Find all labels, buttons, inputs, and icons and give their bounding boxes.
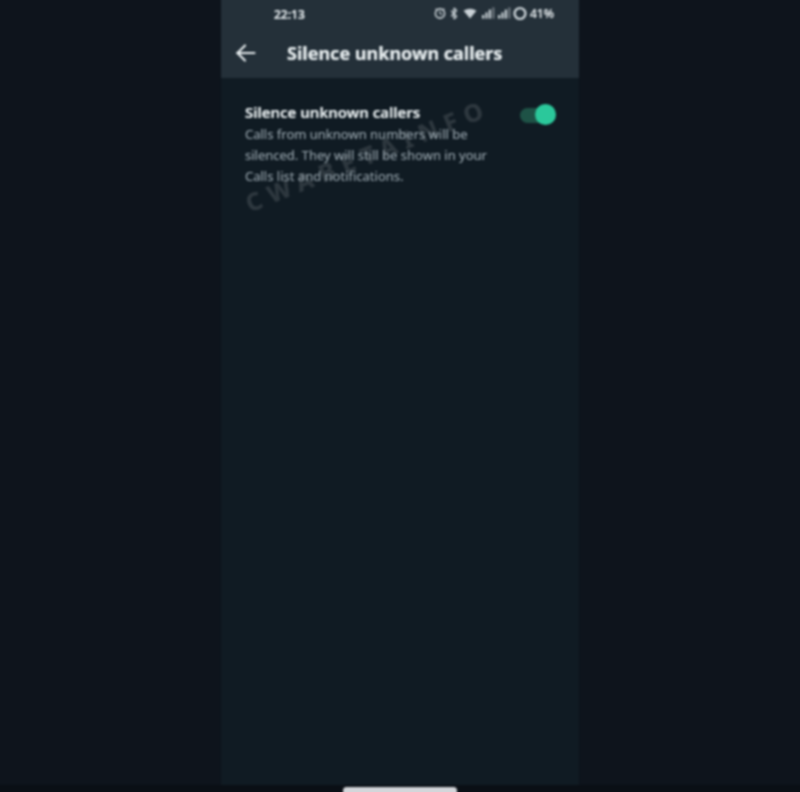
staticText: Silence unknown callers xyxy=(245,102,421,122)
staticText: Calls from unknown numbers will be silen… xyxy=(245,125,487,185)
button[interactable] xyxy=(221,28,271,78)
staticText: CWABETAINFO xyxy=(240,90,496,219)
button[interactable]: Silence unknown callers xyxy=(221,78,579,185)
staticText: 22:13 xyxy=(274,6,305,22)
staticText: Silence unknown callers xyxy=(287,41,503,66)
staticText: 41% xyxy=(530,5,554,21)
